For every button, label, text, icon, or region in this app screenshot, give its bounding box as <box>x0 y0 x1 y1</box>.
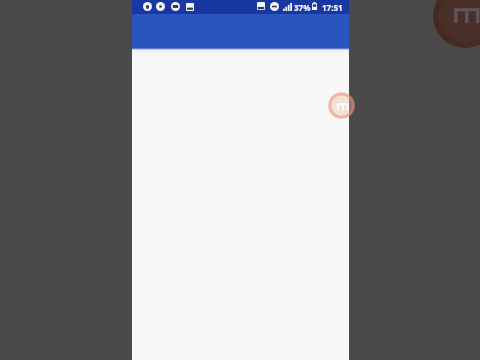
button[interactable]: App bar <box>132 0 349 48</box>
other: Battery 37 percent <box>312 2 317 10</box>
button[interactable]: Notification <box>171 2 180 11</box>
button[interactable]: Notification <box>156 2 165 11</box>
other: Mobile signal <box>283 3 292 11</box>
staticText: 37% <box>294 2 311 13</box>
staticText: 17:51 <box>322 2 343 13</box>
other: Do not disturb <box>270 2 279 11</box>
button[interactable]: Screenshot saved <box>186 3 194 11</box>
other: Screen capture <box>257 2 265 10</box>
button[interactable]: Notification <box>143 2 152 11</box>
button[interactable]: Content <box>132 48 349 360</box>
